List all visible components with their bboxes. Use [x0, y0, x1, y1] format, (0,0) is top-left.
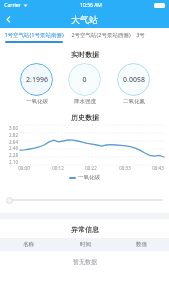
staticText: 3号 — [136, 31, 145, 39]
staticText: 10:56 AM — [80, 2, 102, 9]
staticText: 异常信息 — [71, 225, 99, 234]
staticText: 2号空气站(2号泵站西侧) — [71, 31, 131, 39]
staticText: 00:22 — [85, 165, 97, 171]
staticText: 2.1996 — [26, 75, 48, 85]
staticText: 历史数据 — [71, 113, 99, 122]
staticText: 00:43 — [152, 165, 164, 171]
button[interactable]: 0.0058 — [117, 63, 150, 96]
staticText: 暂无数据 — [73, 258, 97, 266]
button[interactable]: 2号空气站(2号泵站西侧) — [71, 31, 131, 43]
staticText: 00:33 — [119, 165, 131, 171]
staticText: 实时数据 — [71, 50, 99, 59]
staticText: 2.10 — [9, 159, 18, 165]
staticText: 名称 — [23, 241, 34, 248]
button[interactable]: 1号空气站(1号泵站南侧) — [3, 31, 65, 43]
staticText: 大气站 — [71, 14, 98, 25]
staticText: 一氧化碳 — [78, 174, 100, 181]
staticText: 1号空气站(1号泵站南侧) — [4, 31, 64, 39]
staticText: 一氧化碳 — [26, 98, 48, 105]
staticText: 0.0058 — [123, 75, 145, 85]
staticText: 00:00 — [18, 165, 30, 171]
staticText: 时间 — [80, 241, 91, 248]
button[interactable]: 0 — [68, 63, 101, 96]
staticText: 3.00 — [9, 125, 18, 131]
button[interactable]: Time range slider — [6, 195, 163, 205]
staticText: 2.46 — [9, 145, 18, 151]
staticText: Carrier — [4, 2, 21, 9]
staticText: 2.82 — [9, 132, 18, 138]
staticText: 数值 — [136, 241, 147, 248]
staticText: 00:12 — [52, 165, 64, 171]
staticText: 二氧化氮 — [123, 98, 145, 105]
staticText: 2.28 — [9, 152, 18, 158]
button[interactable]: 2.1996 — [20, 63, 53, 96]
button[interactable]: Back — [0, 11, 17, 28]
staticText: 2.64 — [9, 139, 18, 145]
button[interactable]: 3号 — [136, 31, 145, 43]
staticText: 0 — [82, 75, 87, 85]
staticText: 降水强度 — [74, 98, 96, 105]
